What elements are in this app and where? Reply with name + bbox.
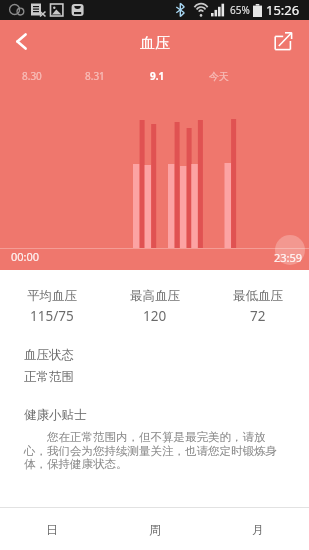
- staticText: 最高血压: [130, 288, 180, 304]
- staticText: 23:59: [274, 250, 303, 265]
- staticText: 血压状态: [24, 347, 74, 363]
- button[interactable]: 平均血压: [0, 288, 103, 325]
- button[interactable]: 周: [103, 508, 206, 550]
- button[interactable]: Share: [262, 20, 304, 62]
- staticText: 最低血压: [233, 288, 283, 304]
- staticText: 血压: [140, 34, 170, 53]
- button[interactable]: 9.1: [126, 62, 188, 88]
- staticText: 月: [252, 522, 264, 537]
- staticText: 72: [250, 307, 266, 325]
- button[interactable]: Chart options: [275, 235, 305, 265]
- staticText: 00:00: [11, 249, 40, 264]
- staticText: 65%: [230, 3, 250, 17]
- staticText: 平均血压: [27, 288, 77, 304]
- button[interactable]: 月: [206, 508, 309, 550]
- staticText: 8.30: [22, 69, 42, 83]
- staticText: 15:26: [266, 1, 300, 19]
- staticText: 120: [143, 307, 167, 325]
- staticText: 今天: [209, 70, 229, 83]
- button[interactable]: 今天: [188, 62, 250, 88]
- button[interactable]: 最低血压: [206, 288, 309, 325]
- staticText: 健康小贴士: [24, 407, 87, 423]
- staticText: 115/75: [30, 307, 74, 325]
- button[interactable]: Back: [0, 20, 42, 62]
- staticText: 8.31: [85, 69, 105, 83]
- staticText: 9.1: [150, 69, 165, 83]
- staticText: 周: [149, 522, 161, 537]
- button[interactable]: 8.31: [64, 62, 126, 88]
- button[interactable]: 8.30: [0, 62, 64, 88]
- button[interactable]: 最高血压: [103, 288, 206, 325]
- staticText: 正常范围: [24, 369, 74, 385]
- staticText: 日: [46, 522, 58, 537]
- button[interactable]: 日: [0, 508, 103, 550]
- staticText: 您在正常范围内，但不算是最完美的，请放心，我们会为您持续测量关注，也请您定时锻炼…: [24, 429, 285, 471]
